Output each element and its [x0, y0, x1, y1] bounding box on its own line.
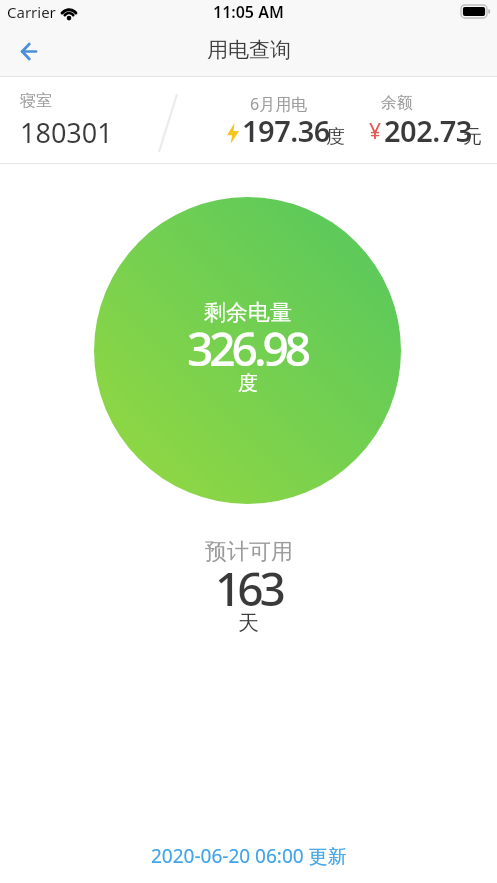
- staticText: 202.73: [384, 111, 472, 150]
- staticText: 预计可用: [205, 538, 293, 566]
- staticText: 326.98: [187, 317, 308, 380]
- button[interactable]: 2020-06-20 06:00 更新: [151, 843, 347, 869]
- button[interactable]: [14, 36, 44, 66]
- staticText: 余额: [381, 93, 413, 113]
- staticText: 6月用电: [250, 93, 308, 115]
- staticText: 用电查询: [207, 37, 291, 63]
- staticText: 剩余电量: [204, 299, 292, 327]
- staticText: 197.36: [242, 111, 330, 150]
- staticText: Carrier: [7, 2, 56, 22]
- staticText: 度: [326, 125, 345, 149]
- staticText: 11:05 AM: [213, 1, 284, 23]
- staticText: 天: [238, 610, 259, 636]
- staticText: 180301: [20, 114, 113, 151]
- staticText: 寝室: [20, 91, 52, 111]
- staticText: ¥: [369, 117, 382, 146]
- staticText: 度: [238, 371, 258, 396]
- staticText: 163: [215, 557, 282, 620]
- button[interactable]: 剩余电量: [94, 197, 401, 504]
- staticText: 元: [463, 125, 482, 149]
